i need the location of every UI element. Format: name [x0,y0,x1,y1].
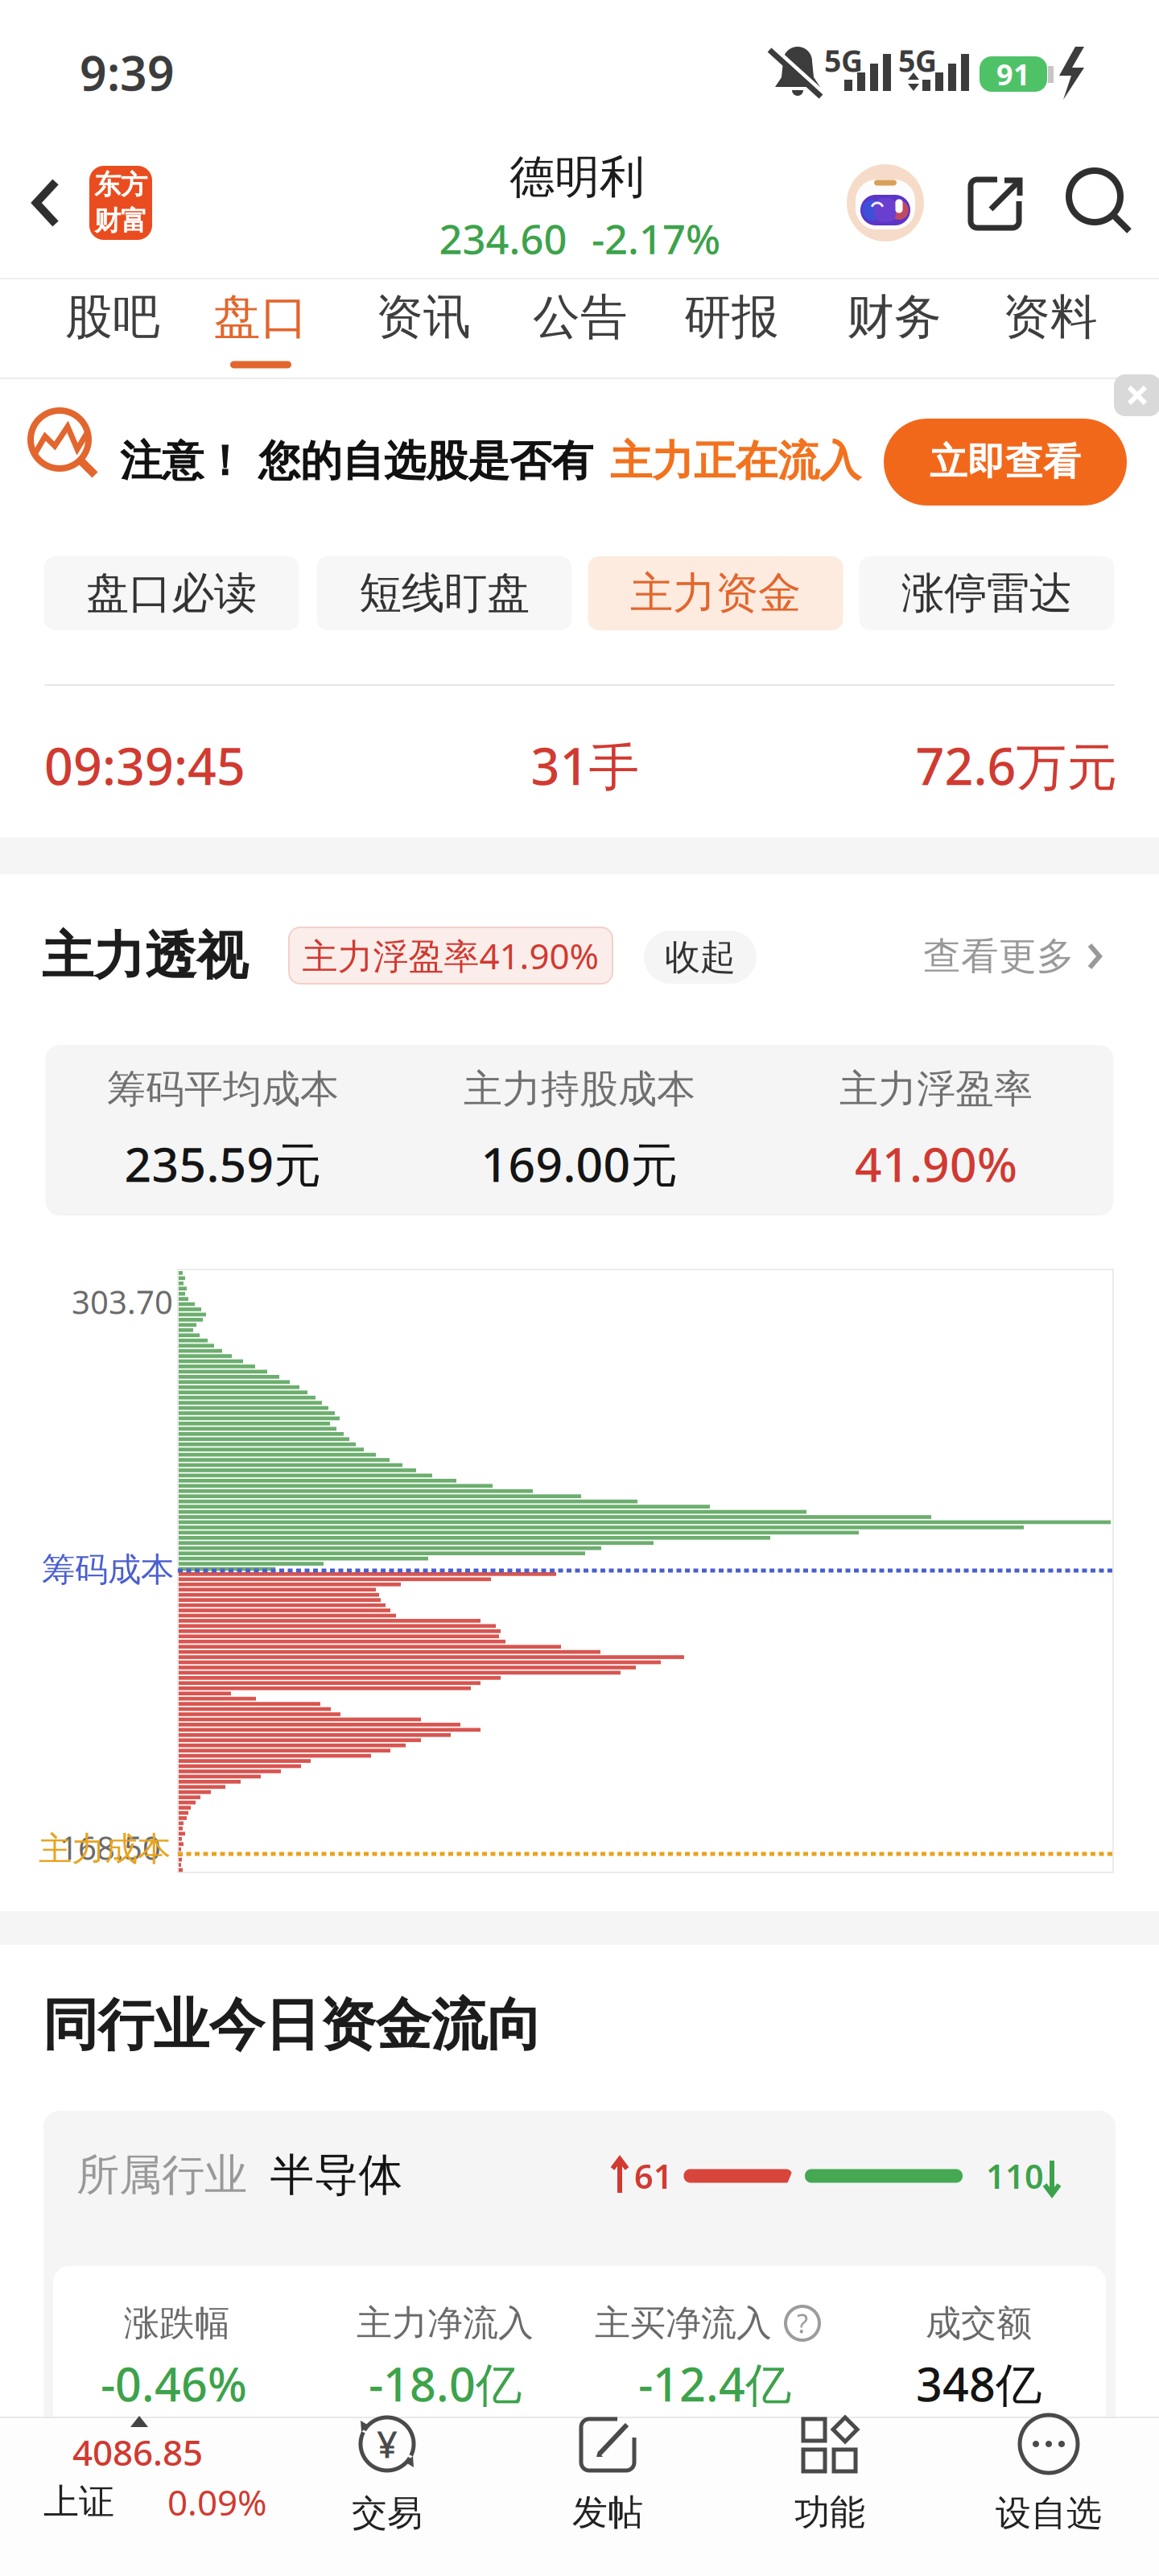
button[interactable]: 主力资金 [588,556,843,630]
staticText: 主力正在流入 [610,436,861,487]
button[interactable]: 收起 [644,931,757,984]
button[interactable]: 短线盯盘 [317,556,572,630]
staticText: 立即查看 [930,439,1081,485]
button[interactable]: 资讯 [363,280,484,354]
staticText: 东方 [94,168,147,201]
staticText: 资料 [1003,288,1098,346]
staticText: -2.17% [592,211,720,265]
staticText: 财富 [94,204,147,237]
staticText: 涨停雷达 [901,567,1072,620]
button[interactable]: Back [32,178,60,228]
staticText: 公告 [533,288,628,346]
staticText: ? [797,2306,808,2340]
staticText: 主力净流入 [357,2301,534,2345]
button[interactable]: 盘口 [200,280,321,354]
button[interactable]: 4086.85 [32,2417,306,2545]
staticText: 110 [986,2154,1044,2198]
button[interactable]: 公告 [520,280,641,354]
staticText: -0.46% [101,2353,247,2414]
staticText: 所属行业 [76,2149,247,2201]
staticText: 半导体 [270,2148,403,2202]
staticText: 主力持股成本 [464,1065,695,1113]
staticText: 上证 [43,2480,114,2524]
button[interactable]: 涨停雷达 [859,556,1114,630]
staticText: 发帖 [572,2491,643,2534]
staticText: 9:39 [80,41,175,104]
staticText: 91 [996,55,1030,93]
staticText: 5G [824,40,863,80]
staticText: 涨跌幅 [124,2301,230,2345]
button[interactable]: 主买净流入说明 [784,2305,821,2342]
button[interactable]: 盘口必读 [44,556,299,630]
button[interactable]: 功能 [794,2415,865,2534]
staticText: 研报 [684,288,779,346]
button[interactable]: ¥ [352,2414,423,2535]
staticText: 盘口 [213,288,308,346]
staticText: 资讯 [376,288,471,346]
staticText: 财务 [847,288,942,346]
staticText: 交易 [352,2491,423,2535]
staticText: 5G [898,40,937,80]
button[interactable]: Share [967,175,1023,232]
button[interactable]: 东方财富 [89,166,152,240]
button[interactable]: 查看更多 [923,933,1102,979]
staticText: -12.4亿 [638,2353,791,2414]
staticText: 4086.85 [72,2429,203,2476]
staticText: 筹码成本 [42,1549,174,1590]
staticText: 注意！ 您的自选股是否有 [120,436,593,487]
staticText: 同行业今日资金流向 [42,1991,542,2060]
staticText: 303.70 [72,1280,173,1323]
staticText: 主买净流入 [595,2301,772,2345]
staticText: 成交额 [926,2301,1032,2345]
staticText: 61 [634,2154,673,2198]
staticText: 09:39:45 [44,732,245,799]
staticText: 41.90% [855,1132,1017,1195]
button[interactable]: 研报 [671,280,792,354]
staticText: -18.0亿 [369,2353,522,2414]
staticText: 股吧 [65,288,160,346]
staticText: 348亿 [916,2353,1041,2414]
staticText: 主力浮盈率41.90% [302,932,599,979]
staticText: 查看更多 [923,933,1074,979]
staticText: 235.59元 [124,1132,322,1195]
button[interactable]: 立即查看 [884,419,1127,506]
button[interactable]: 发帖 [572,2415,643,2534]
staticText: 设自选 [996,2491,1102,2535]
button[interactable]: 股吧 [52,280,173,354]
button[interactable]: 设自选 [996,2414,1102,2535]
button[interactable]: 助手 [847,164,924,242]
staticText: 盘口必读 [86,567,257,620]
staticText: 主力透视 [42,925,248,988]
staticText: 169.00元 [481,1132,678,1195]
staticText: 168.50 [60,1826,161,1869]
button[interactable]: 财务 [834,280,955,354]
staticText: 主力资金 [630,567,801,620]
staticText: 功能 [794,2491,865,2534]
staticText: 0.09% [167,2478,267,2525]
button[interactable]: Search [1066,167,1133,235]
staticText: 短线盯盘 [359,567,530,620]
button[interactable]: 资料 [990,280,1111,354]
button[interactable]: Close [1114,374,1159,416]
staticText: 72.6万元 [916,732,1118,799]
staticText: 主力浮盈率 [839,1065,1033,1113]
staticText: ¥ [377,2420,398,2468]
staticText: 收起 [665,935,736,979]
staticText: 筹码平均成本 [107,1065,339,1113]
staticText: 31手 [531,732,639,799]
staticText: 德明利 [509,149,645,205]
staticText: 234.60 [439,211,567,265]
staticText: 主力成本 [39,1829,171,1870]
